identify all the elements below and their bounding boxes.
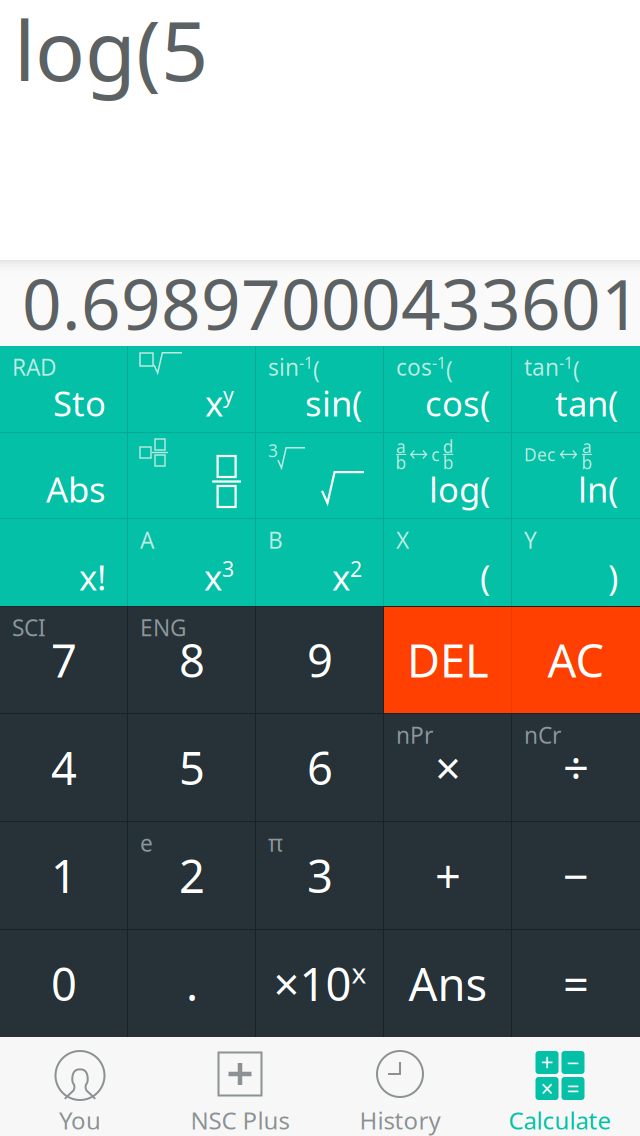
staticText: 3: [268, 439, 278, 462]
button[interactable]: [512, 930, 640, 1037]
button[interactable]: DEL: [384, 607, 512, 713]
button[interactable]: SCI: [0, 606, 128, 713]
staticText: Sto: [53, 380, 106, 426]
staticText: x: [332, 554, 350, 600]
staticText: x: [351, 954, 366, 991]
button[interactable]: [0, 714, 128, 821]
staticText: cos(: [425, 380, 490, 426]
staticText: =: [566, 1073, 579, 1103]
staticText: 3: [307, 845, 333, 906]
staticText: Y: [524, 525, 537, 555]
staticText: tan: [524, 352, 559, 382]
button[interactable]: [128, 714, 256, 821]
button[interactable]: π: [256, 822, 384, 929]
button[interactable]: [128, 433, 256, 518]
button[interactable]: nPr: [384, 714, 512, 821]
staticText: y: [223, 380, 234, 409]
staticText: (: [313, 354, 320, 384]
staticText: cos: [396, 352, 432, 382]
button[interactable]: X: [384, 519, 512, 606]
button[interactable]: +: [480, 1037, 640, 1136]
staticText: 3: [222, 554, 234, 583]
button[interactable]: [512, 822, 640, 929]
staticText: 0.69897000433601: [22, 257, 640, 349]
staticText: SCI: [12, 612, 46, 643]
staticText: 5: [179, 737, 205, 798]
button[interactable]: AC: [512, 607, 640, 713]
button[interactable]: ×10: [256, 930, 384, 1037]
button[interactable]: [0, 822, 128, 929]
button[interactable]: e: [128, 822, 256, 929]
staticText: Ans: [408, 953, 487, 1014]
staticText: sin(: [305, 380, 362, 426]
button[interactable]: tan: [512, 346, 640, 432]
staticText: X: [396, 525, 409, 555]
button[interactable]: ENG: [128, 606, 256, 713]
button[interactable]: [128, 930, 256, 1037]
button[interactable]: [384, 822, 512, 929]
button[interactable]: NSC Plus: [160, 1037, 320, 1136]
button[interactable]: B: [256, 519, 384, 606]
staticText: -1: [559, 352, 573, 373]
button[interactable]: x!: [0, 519, 128, 606]
staticText: NSC Plus: [190, 1104, 289, 1136]
staticText: -1: [299, 352, 313, 373]
button[interactable]: [0, 930, 128, 1037]
button[interactable]: Y: [512, 519, 640, 606]
staticText: 1: [51, 845, 77, 906]
staticText: 6: [307, 737, 333, 798]
button[interactable]: Abs: [0, 433, 128, 518]
staticText: =: [563, 953, 589, 1014]
staticText: 4: [51, 737, 77, 798]
button[interactable]: nCr: [512, 714, 640, 821]
staticText: x: [205, 380, 223, 426]
button[interactable]: cos: [384, 346, 512, 432]
staticText: ×: [435, 737, 461, 798]
staticText: ENG: [140, 612, 187, 643]
button[interactable]: A: [128, 519, 256, 606]
staticText: nCr: [524, 720, 561, 750]
button[interactable]: [256, 714, 384, 821]
staticText: +: [435, 845, 461, 906]
staticText: tan(: [555, 380, 618, 426]
staticText: d: [443, 435, 454, 458]
staticText: a: [396, 435, 406, 458]
button[interactable]: History: [320, 1037, 480, 1136]
staticText: 9: [307, 630, 333, 690]
staticText: ÷: [563, 737, 589, 798]
button[interactable]: [256, 606, 384, 713]
button[interactable]: sin: [256, 346, 384, 432]
staticText: B: [268, 525, 283, 555]
button[interactable]: You: [0, 1037, 160, 1136]
staticText: (: [480, 554, 490, 600]
staticText: −: [566, 1047, 579, 1077]
staticText: b: [396, 451, 407, 474]
staticText: b: [443, 451, 454, 474]
staticText: ×: [540, 1073, 553, 1103]
staticText: .: [186, 953, 198, 1014]
staticText: A: [140, 525, 154, 555]
staticText: e: [140, 828, 153, 858]
staticText: 2: [179, 845, 205, 906]
button[interactable]: [384, 930, 512, 1037]
staticText: You: [59, 1104, 101, 1136]
staticText: History: [359, 1104, 440, 1136]
staticText: log(5: [14, 0, 208, 104]
staticText: sin: [268, 352, 299, 382]
button[interactable]: 3: [256, 433, 384, 518]
staticText: RAD: [12, 352, 57, 382]
staticText: Calculate: [508, 1104, 611, 1136]
button[interactable]: RAD: [0, 346, 128, 432]
staticText: DEL: [407, 630, 489, 690]
staticText: ): [608, 554, 618, 600]
staticText: a: [582, 435, 592, 458]
staticText: b: [582, 451, 593, 474]
button[interactable]: a: [384, 433, 512, 518]
staticText: x!: [79, 554, 106, 600]
staticText: (: [573, 354, 580, 384]
button[interactable]: Dec: [512, 433, 640, 518]
staticText: c: [431, 443, 439, 466]
button[interactable]: x: [128, 346, 256, 432]
staticText: π: [268, 828, 283, 858]
staticText: ln(: [578, 466, 618, 512]
